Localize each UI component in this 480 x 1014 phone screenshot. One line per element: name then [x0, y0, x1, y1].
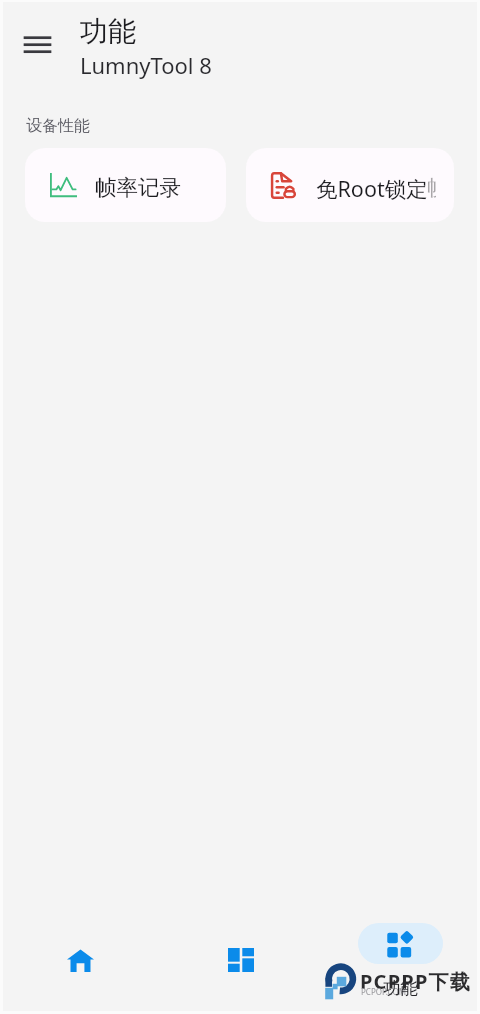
staticText: 功能 [80, 14, 136, 49]
staticText: 免Root锁定 [316, 174, 428, 203]
staticText: 设备性能 [26, 116, 90, 136]
button[interactable]: Dashboard [198, 938, 283, 982]
button[interactable]: Menu [13, 20, 61, 68]
staticText: PCPPP下载 [360, 968, 471, 995]
staticText: 帧率记录 [95, 174, 181, 201]
button[interactable]: 功能 [358, 923, 443, 999]
button[interactable]: 免Root锁定 [246, 148, 454, 222]
button[interactable]: Home [38, 938, 123, 982]
staticText: PCPOP.COM [361, 986, 406, 997]
staticText: 帧 [427, 174, 436, 201]
staticText: LumnyTool 8 [80, 50, 212, 80]
button[interactable]: 帧率记录 [25, 148, 226, 222]
staticText: 功能 [383, 977, 418, 999]
